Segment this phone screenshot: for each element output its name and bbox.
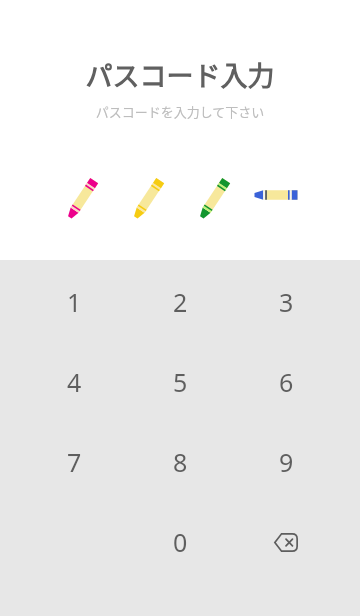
button[interactable]: 7: [21, 422, 127, 502]
staticText: 8: [173, 445, 188, 479]
staticText: パスコードを入力して下さい: [0, 102, 360, 121]
button[interactable]: 8: [127, 422, 233, 502]
staticText: 5: [173, 365, 188, 399]
button[interactable]: 0: [127, 502, 233, 582]
button[interactable]: Backspace: [233, 502, 339, 582]
staticText: パスコード入力: [0, 55, 360, 94]
button[interactable]: 4: [21, 342, 127, 422]
button[interactable]: 1: [21, 261, 127, 342]
staticText: 0: [173, 525, 188, 559]
button[interactable]: 2: [127, 261, 233, 342]
staticText: 7: [67, 445, 82, 479]
staticText: 4: [67, 365, 82, 399]
staticText: 6: [279, 365, 294, 399]
button[interactable]: 3: [233, 261, 339, 342]
staticText: 3: [279, 285, 294, 319]
staticText: 2: [173, 285, 188, 319]
staticText: 1: [67, 285, 82, 319]
button[interactable]: 5: [127, 342, 233, 422]
button[interactable]: 9: [233, 422, 339, 502]
staticText: 9: [279, 445, 294, 479]
button[interactable]: 6: [233, 342, 339, 422]
